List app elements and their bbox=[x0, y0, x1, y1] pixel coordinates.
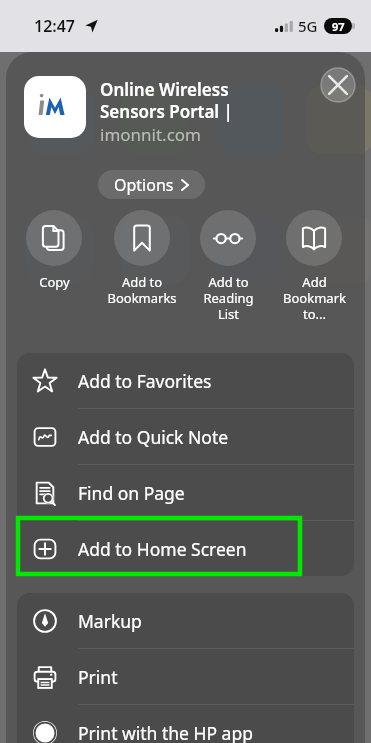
button[interactable]: Print bbox=[17, 649, 354, 705]
staticText: Markup bbox=[78, 609, 142, 633]
button[interactable]: Print with the HP app bbox=[17, 705, 354, 743]
button[interactable]: Add to Quick Note bbox=[17, 409, 354, 465]
button[interactable]: Add to Favorites bbox=[17, 353, 354, 409]
staticText: Add to Reading List bbox=[203, 273, 254, 322]
button[interactable]: Add to Bookmarks bbox=[101, 210, 183, 306]
staticText: Online Wireless Sensors Portal | bbox=[100, 78, 255, 123]
button[interactable]: Add Bookmark to... bbox=[273, 210, 355, 322]
staticText: Add to Bookmarks bbox=[107, 273, 177, 306]
staticText: Options bbox=[114, 174, 174, 196]
button[interactable]: Add to Home Screen bbox=[17, 521, 354, 576]
staticText: Add to Home Screen bbox=[78, 537, 247, 561]
staticText: 12:47 bbox=[34, 15, 76, 37]
staticText: Add to Quick Note bbox=[78, 425, 229, 449]
button[interactable]: Copy bbox=[13, 210, 95, 291]
staticText: 5G bbox=[298, 16, 318, 36]
staticText: Print with the HP app bbox=[78, 721, 253, 743]
button[interactable]: Find on Page bbox=[17, 465, 354, 521]
button[interactable]: Markup bbox=[17, 593, 354, 649]
staticText: imonnit.com bbox=[100, 123, 201, 146]
staticText: Add Bookmark to... bbox=[283, 273, 346, 322]
staticText: Find on Page bbox=[78, 481, 185, 505]
staticText: 97 bbox=[332, 19, 345, 34]
staticText: Copy bbox=[39, 273, 70, 291]
staticText: Print bbox=[78, 665, 118, 689]
staticText: Add to Favorites bbox=[78, 369, 212, 393]
button[interactable]: Add to Reading List bbox=[187, 210, 269, 322]
button[interactable]: Close bbox=[320, 67, 356, 103]
button[interactable]: Options bbox=[98, 170, 205, 199]
